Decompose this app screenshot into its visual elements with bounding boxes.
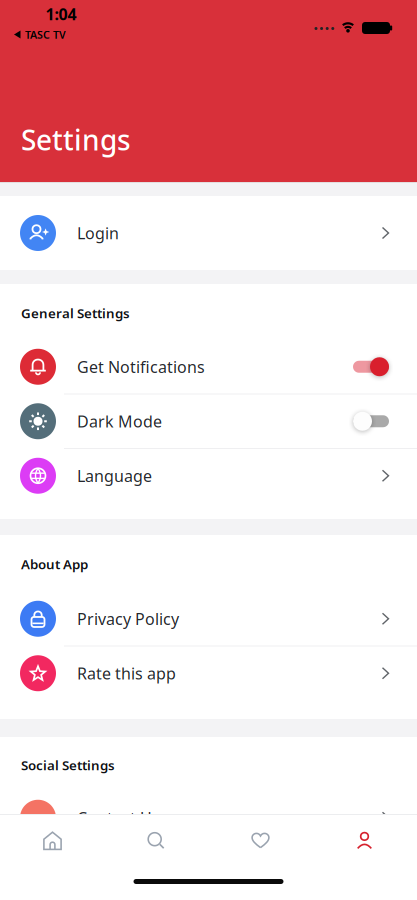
button[interactable]: Profile	[312, 816, 416, 866]
staticText: 1:04	[45, 3, 76, 25]
staticText: Social Settings	[21, 756, 115, 774]
button[interactable]: Back to TASC TV	[14, 27, 66, 42]
staticText: Get Notifications	[77, 356, 205, 377]
staticText: General Settings	[21, 304, 130, 322]
staticText: Rate this app	[77, 663, 176, 684]
staticText: About App	[21, 555, 88, 573]
button[interactable]: Home	[0, 816, 104, 866]
staticText: Privacy Policy	[77, 608, 179, 629]
button[interactable]: Off	[352, 410, 390, 432]
button[interactable]: Language	[0, 449, 417, 502]
button[interactable]: Privacy Policy	[0, 592, 417, 645]
button[interactable]: Rate this app	[0, 646, 417, 700]
button[interactable]: Get Notifications	[0, 340, 417, 393]
staticText: Contact Us	[77, 807, 160, 828]
staticText: Dark Mode	[77, 411, 162, 432]
staticText: Settings	[21, 121, 131, 158]
button[interactable]: Login	[0, 206, 417, 260]
button[interactable]: Dark Mode	[0, 394, 417, 448]
staticText: Language	[77, 465, 152, 486]
button[interactable]: Favorites	[208, 816, 312, 866]
staticText: TASC TV	[25, 27, 66, 42]
button[interactable]: Search	[104, 816, 208, 866]
staticText: Login	[77, 222, 119, 244]
button[interactable]: On	[352, 356, 390, 378]
button[interactable]: Contact Us	[0, 791, 417, 844]
